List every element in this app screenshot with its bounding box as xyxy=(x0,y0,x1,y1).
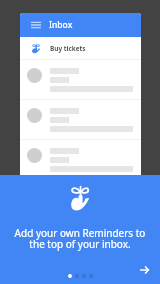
button[interactable] xyxy=(66,272,73,279)
button[interactable] xyxy=(20,100,141,140)
button[interactable] xyxy=(20,60,141,100)
button[interactable]: Open navigation menu xyxy=(20,13,141,37)
button[interactable]: Buy tickets xyxy=(20,37,141,59)
button[interactable] xyxy=(87,272,94,279)
button[interactable] xyxy=(20,140,141,178)
button[interactable] xyxy=(73,272,80,279)
staticText: Inbox xyxy=(49,19,73,31)
staticText: Add your own Reminders to the top of you… xyxy=(10,226,150,251)
other: Open navigation menu xyxy=(31,22,41,28)
staticText: Buy tickets xyxy=(50,44,86,53)
button[interactable] xyxy=(80,272,87,279)
button[interactable]: Next xyxy=(132,258,156,282)
